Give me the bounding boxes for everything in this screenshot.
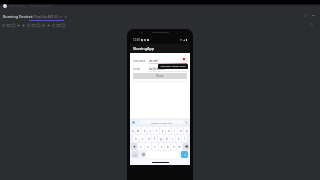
button[interactable]: Record [46, 23, 51, 28]
button[interactable]: i [172, 127, 177, 134]
button[interactable]: q [131, 127, 135, 134]
button[interactable]: u [166, 127, 171, 134]
button[interactable]: v [159, 143, 164, 150]
staticText: Share [156, 74, 164, 78]
button[interactable]: More [56, 23, 61, 28]
staticText: Pixel 6a API 33 [34, 14, 58, 19]
staticText: ab@cd.com [149, 67, 165, 71]
button[interactable]: Volume up [6, 23, 11, 28]
staticText: m [178, 145, 181, 149]
staticText: Search or type URL [151, 121, 173, 124]
button[interactable]: b [165, 143, 170, 150]
button[interactable]: Enter [181, 151, 188, 158]
button[interactable]: Settings [61, 23, 66, 28]
button[interactable]: Zoom [309, 22, 314, 27]
button[interactable]: g [158, 135, 163, 142]
button[interactable]: Pixel 6a API 33 [30, 14, 67, 19]
staticText: username [133, 59, 146, 63]
button[interactable]: r [148, 127, 153, 134]
staticText: w [137, 129, 140, 133]
button[interactable]: l [182, 135, 187, 142]
button[interactable]: Rotate right [21, 23, 26, 28]
button[interactable]: m [177, 143, 182, 150]
staticText: a [135, 137, 137, 141]
button[interactable]: j [170, 135, 175, 142]
staticText: v [161, 145, 163, 149]
button[interactable]: Overview [36, 23, 41, 28]
button[interactable]: p [184, 127, 189, 134]
staticText: ?123 [133, 154, 137, 156]
staticText: y [162, 129, 164, 133]
staticText: ▾ [65, 15, 67, 18]
button[interactable]: e [142, 127, 147, 134]
staticText: email [133, 67, 140, 71]
button[interactable]: ?123 [132, 151, 138, 158]
button[interactable]: Minimize [311, 13, 316, 18]
staticText: u [168, 129, 170, 133]
button[interactable]: Shift [131, 143, 137, 150]
staticText: i [174, 129, 175, 133]
button[interactable]: d [146, 135, 151, 142]
button[interactable]: Search or type URL [140, 120, 184, 124]
staticText: c [154, 145, 156, 149]
button[interactable]: More options [185, 121, 188, 124]
staticText: l [184, 137, 185, 141]
staticText: SharingApp – MainActivity.kt [9, 4, 52, 8]
button[interactable]: Backspace [183, 143, 189, 150]
button[interactable]: s [140, 135, 145, 142]
button[interactable]: Emoji [142, 153, 145, 156]
button[interactable]: Snapshot [51, 23, 56, 28]
button[interactable]: a [133, 135, 139, 142]
button[interactable]: z [138, 143, 144, 150]
staticText: SharingApp [133, 46, 155, 51]
staticText: d [148, 137, 150, 141]
staticText: abcdef [149, 59, 159, 63]
button[interactable]: o [178, 127, 183, 134]
staticText: × [60, 14, 63, 19]
staticText: t [156, 129, 157, 133]
staticText: f [154, 137, 155, 141]
staticText: 12:30 [133, 38, 140, 42]
button[interactable]: h [164, 135, 169, 142]
staticText: Running Devices [3, 14, 33, 19]
button[interactable]: Screenshot [41, 23, 46, 28]
staticText: q [132, 129, 134, 133]
staticText: b [167, 145, 169, 149]
button[interactable]: Share [133, 73, 187, 79]
button[interactable]: w [136, 127, 141, 134]
staticText: o [180, 129, 182, 133]
button[interactable]: Settings [303, 13, 308, 18]
staticText: x [147, 145, 149, 149]
staticText: e [144, 129, 146, 133]
button[interactable]: c [152, 143, 158, 150]
staticText: j [172, 137, 173, 141]
button[interactable]: y [160, 127, 165, 134]
button[interactable]: n [171, 143, 176, 150]
button[interactable]: Back [26, 23, 31, 28]
staticText: s [142, 137, 144, 141]
button[interactable]: t [154, 127, 159, 134]
button[interactable]: Google search [132, 121, 135, 124]
button[interactable]: Rotate left [16, 23, 21, 28]
button[interactable]: Power [1, 23, 6, 28]
staticText: z [140, 145, 142, 149]
button[interactable]: Home [31, 23, 36, 28]
staticText: g [160, 137, 162, 141]
staticText: Username already taken [160, 65, 186, 68]
staticText: n [173, 145, 175, 149]
staticText: h [166, 137, 168, 141]
button[interactable]: f [152, 135, 157, 142]
staticText: k [178, 137, 180, 141]
staticText: p [186, 129, 188, 133]
button[interactable]: k [176, 135, 181, 142]
button[interactable]: x [145, 143, 151, 150]
button[interactable]: Volume down [11, 23, 16, 28]
staticText: r [150, 129, 152, 133]
